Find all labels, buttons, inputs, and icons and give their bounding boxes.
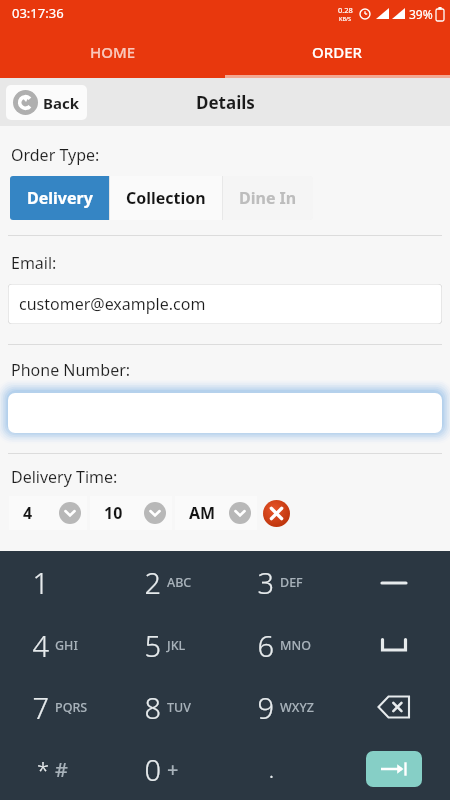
button[interactable]: Space — [337, 614, 450, 676]
button[interactable]: 4 — [0, 614, 112, 676]
staticText: 4 — [32, 626, 49, 665]
staticText: WXYZ — [280, 699, 314, 716]
staticText: ORDER — [312, 42, 363, 62]
staticText: 8 — [144, 688, 161, 727]
staticText: 0.28 — [338, 5, 353, 15]
staticText: customer@example.com — [19, 293, 206, 315]
staticText: 39% — [409, 6, 433, 22]
button[interactable]: Backspace — [337, 676, 450, 738]
button[interactable]: 10 — [90, 496, 172, 530]
button[interactable]: 5 — [112, 614, 224, 676]
staticText: 10 — [104, 502, 123, 524]
staticText: + — [167, 756, 179, 783]
staticText: 1 — [32, 563, 49, 602]
button[interactable]: 1 — [0, 551, 112, 614]
staticText: Delivery — [27, 187, 93, 209]
staticText: 9 — [257, 688, 274, 727]
button[interactable]: Dash — [337, 551, 450, 614]
button[interactable]: Clear delivery time — [263, 500, 290, 527]
staticText: 7 — [32, 688, 49, 727]
button[interactable]: . — [224, 738, 337, 800]
button[interactable]: 8 — [112, 676, 224, 738]
staticText: 4 — [23, 502, 33, 524]
staticText: GHI — [55, 637, 78, 654]
staticText: Order Type: — [11, 144, 100, 166]
button[interactable]: 4 — [9, 496, 87, 530]
staticText: 5 — [144, 626, 161, 665]
button[interactable]: ORDER — [225, 26, 450, 78]
button[interactable]: Back — [6, 85, 87, 120]
button[interactable]: 6 — [224, 614, 337, 676]
staticText: Email: — [11, 252, 57, 274]
staticText: Collection — [126, 187, 206, 209]
staticText: 6 — [257, 626, 274, 665]
button[interactable]: * — [0, 738, 112, 800]
staticText: . — [268, 754, 274, 784]
staticText: MNO — [280, 637, 311, 654]
staticText: Delivery Time: — [11, 466, 118, 488]
staticText: KB/S — [339, 15, 352, 22]
button[interactable]: AM — [175, 496, 257, 530]
staticText: PQRS — [55, 699, 88, 716]
staticText: # — [55, 756, 68, 783]
button[interactable]: 3 — [224, 551, 337, 614]
button[interactable]: 7 — [0, 676, 112, 738]
staticText: * — [36, 754, 49, 784]
staticText: Dine In — [239, 187, 297, 209]
button[interactable]: HOME — [0, 26, 225, 78]
staticText: AM — [189, 502, 216, 524]
staticText: 3 — [257, 563, 274, 602]
staticText: Phone Number: — [11, 359, 131, 381]
button[interactable]: customer@example.com — [8, 284, 442, 324]
staticText: DEF — [280, 574, 303, 591]
staticText: TUV — [167, 699, 191, 716]
staticText: ABC — [167, 574, 192, 591]
staticText: Back — [43, 93, 80, 113]
button[interactable]: Delivery — [10, 176, 109, 220]
button[interactable]: Collection — [109, 176, 222, 220]
staticText: 0 — [144, 750, 161, 789]
staticText: Details — [196, 91, 255, 114]
staticText: 03:17:36 — [12, 4, 64, 22]
staticText: HOME — [90, 42, 136, 62]
button[interactable]: Enter — [337, 738, 450, 800]
button[interactable]: 9 — [224, 676, 337, 738]
staticText: 2 — [144, 563, 161, 602]
staticText: JKL — [167, 637, 186, 654]
button[interactable]: 2 — [112, 551, 224, 614]
button[interactable]: 0 — [112, 738, 224, 800]
button[interactable] — [8, 393, 442, 433]
button[interactable]: Dine In — [222, 176, 313, 220]
